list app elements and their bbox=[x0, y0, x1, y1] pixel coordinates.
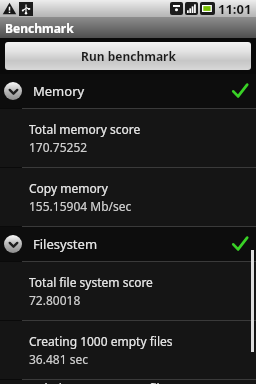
staticText: Filesystem bbox=[33, 235, 98, 253]
other: Collapse Memory bbox=[4, 82, 22, 100]
staticText: Copy memory bbox=[29, 180, 108, 196]
button[interactable]: Creating 1000 empty files bbox=[0, 321, 256, 379]
staticText: Memory bbox=[33, 82, 85, 100]
button[interactable]: Copy memory bbox=[0, 168, 256, 226]
button[interactable]: Collapse Memory bbox=[0, 74, 256, 108]
other: Collapse Filesystem bbox=[4, 235, 22, 253]
button[interactable]: Run benchmark bbox=[5, 42, 251, 70]
staticText: 170.75252 bbox=[29, 139, 88, 155]
button[interactable]: Total file system score bbox=[0, 262, 256, 320]
staticText: Total memory score bbox=[29, 121, 141, 137]
staticText: Run benchmark bbox=[81, 48, 176, 64]
staticText: 11:01 bbox=[218, 0, 252, 17]
staticText: 155.15904 Mb/sec bbox=[29, 198, 132, 214]
other: Completed bbox=[232, 83, 248, 99]
staticText: 72.80018 bbox=[29, 292, 81, 308]
button[interactable]: Deleting 1000 empty files bbox=[0, 380, 256, 384]
staticText: Creating 1000 empty files bbox=[29, 333, 173, 349]
other: Completed bbox=[232, 236, 248, 252]
staticText: 36.481 sec bbox=[29, 351, 88, 367]
staticText: Deleting 1000 empty files bbox=[29, 380, 173, 384]
staticText: Total file system score bbox=[29, 274, 153, 290]
button[interactable]: Collapse Filesystem bbox=[0, 227, 256, 261]
button[interactable]: Total memory score bbox=[0, 109, 256, 167]
staticText: Benchmark bbox=[5, 20, 74, 36]
